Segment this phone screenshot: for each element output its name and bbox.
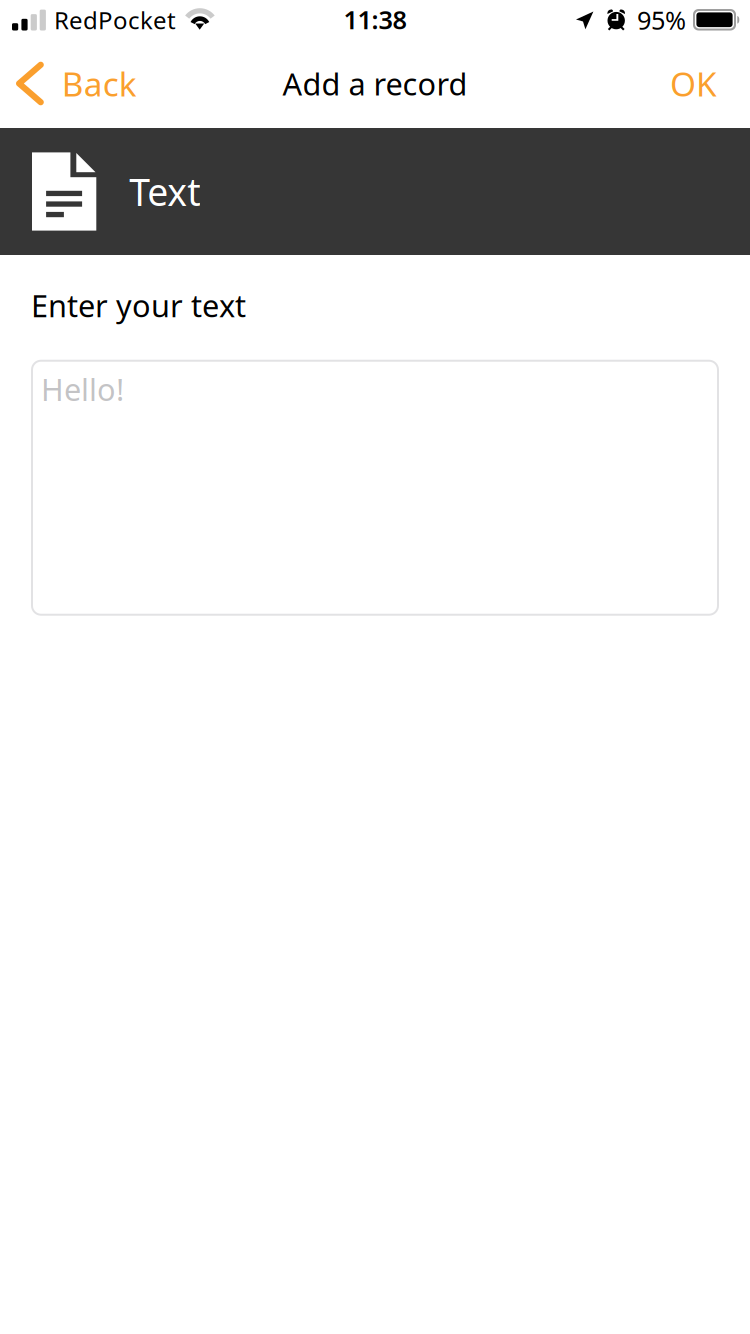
- button[interactable]: Back: [0, 44, 151, 128]
- button[interactable]: Enter your text, Hello!: [32, 361, 718, 615]
- staticText: 95%: [637, 3, 686, 37]
- staticText: 11:38: [343, 3, 406, 36]
- staticText: Enter your text: [31, 285, 246, 326]
- staticText: OK: [670, 61, 717, 106]
- staticText: Back: [62, 61, 137, 106]
- staticText: Hello!: [41, 369, 124, 409]
- staticText: RedPocket: [54, 4, 176, 36]
- staticText: Text: [129, 167, 200, 216]
- button[interactable]: OK: [648, 44, 750, 128]
- staticText: Add a record: [282, 63, 467, 104]
